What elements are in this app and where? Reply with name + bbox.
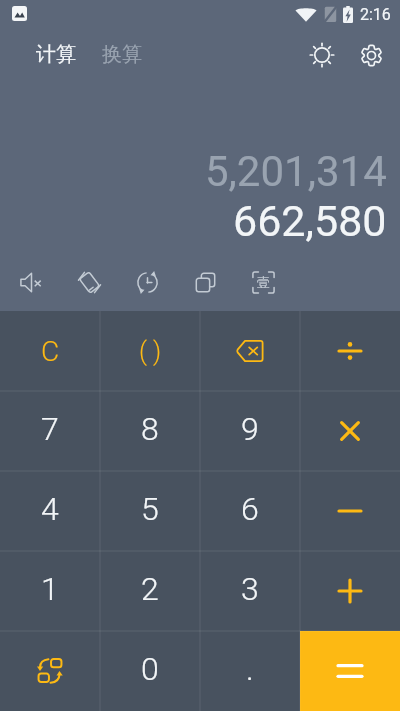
button[interactable]: 9: [200, 391, 300, 471]
button[interactable]: 2: [100, 551, 200, 631]
button[interactable]: ( ): [100, 311, 200, 391]
button[interactable]: Divide: [300, 311, 400, 391]
button[interactable]: 计算: [23, 33, 89, 76]
button[interactable]: Plus: [300, 551, 400, 631]
button[interactable]: Mute: [2, 260, 60, 304]
staticText: 8: [141, 410, 159, 448]
staticText: 3: [241, 570, 259, 608]
button[interactable]: 0: [100, 631, 200, 711]
staticText: 9: [241, 410, 259, 448]
button[interactable]: Amount in words: [234, 260, 292, 304]
staticText: ( ): [139, 337, 162, 366]
button[interactable]: Minus: [300, 471, 400, 551]
staticText: 662,580: [233, 196, 387, 246]
button[interactable]: Settings: [348, 31, 394, 77]
button[interactable]: Backspace: [200, 311, 300, 391]
button[interactable]: 换算: [89, 33, 155, 76]
button[interactable]: 5: [100, 471, 200, 551]
staticText: 1: [41, 570, 59, 608]
button[interactable]: 7: [0, 391, 100, 471]
button[interactable]: Equals: [300, 631, 400, 711]
staticText: C: [41, 335, 60, 368]
staticText: 6: [241, 490, 259, 528]
staticText: 换算: [102, 42, 142, 67]
staticText: .: [246, 650, 254, 688]
staticText: 2:16: [360, 5, 391, 24]
button[interactable]: .: [200, 631, 300, 711]
button[interactable]: Shake to clear: [60, 260, 118, 304]
button[interactable]: Multiply: [300, 391, 400, 471]
staticText: 计算: [36, 42, 76, 67]
button[interactable]: Brightness: [299, 31, 345, 77]
staticText: 4: [41, 490, 59, 528]
button[interactable]: C: [0, 311, 100, 391]
staticText: 0: [141, 650, 159, 688]
staticText: 5: [141, 490, 159, 528]
button[interactable]: 8: [100, 391, 200, 471]
staticText: 2: [141, 570, 159, 608]
button[interactable]: 4: [0, 471, 100, 551]
staticText: 5,201,314: [205, 147, 387, 196]
staticText: 7: [41, 410, 59, 448]
button[interactable]: Copy: [176, 260, 234, 304]
button[interactable]: History: [118, 260, 176, 304]
button[interactable]: Convert units: [0, 631, 100, 711]
button[interactable]: 6: [200, 471, 300, 551]
button[interactable]: 3: [200, 551, 300, 631]
button[interactable]: 1: [0, 551, 100, 631]
staticText: 壹: [257, 274, 270, 290]
